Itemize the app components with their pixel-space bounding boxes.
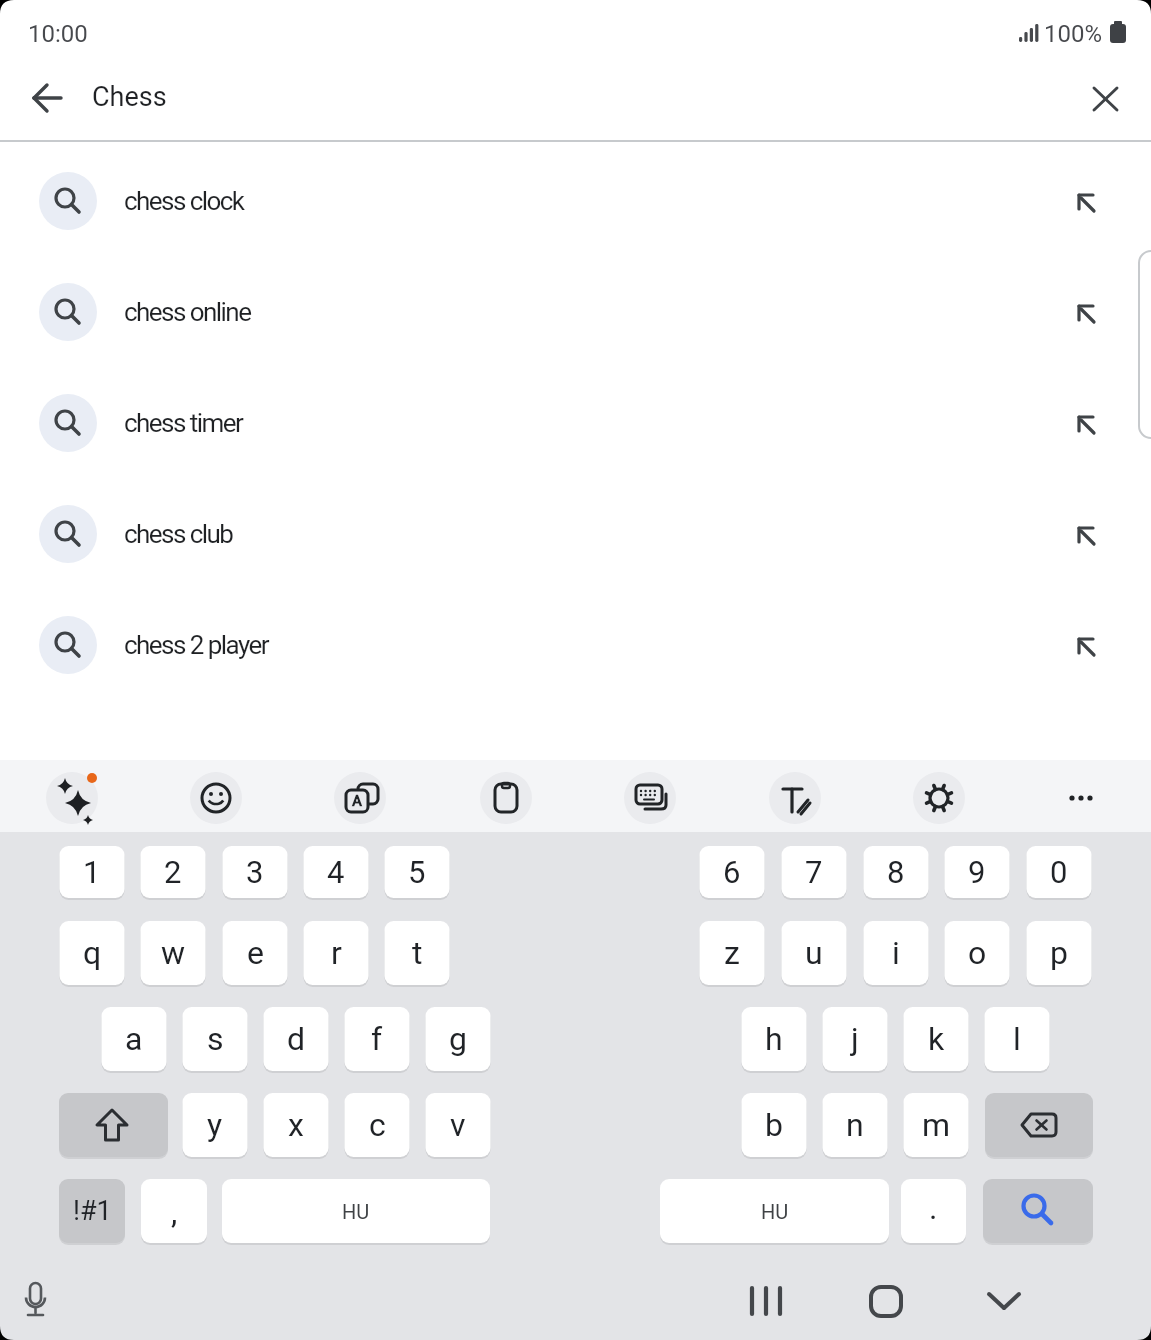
staticText: k [928, 1020, 945, 1058]
staticText: chess club [124, 519, 233, 549]
staticText: chess timer [124, 408, 243, 438]
staticText: 5 [408, 854, 426, 890]
staticText: chess online [124, 297, 251, 327]
staticText: r [331, 934, 342, 972]
staticText: 8 [887, 854, 905, 890]
staticText: 9 [968, 854, 986, 890]
staticText: 100% [1044, 20, 1103, 48]
staticText: 7 [805, 854, 823, 890]
staticText: Chess [92, 81, 167, 113]
staticText: . [929, 1189, 938, 1227]
staticText: !#1 [73, 1195, 112, 1227]
staticText: d [287, 1020, 306, 1058]
staticText: chess clock [124, 186, 244, 216]
staticText: v [450, 1106, 466, 1144]
staticText: HU [761, 1200, 789, 1223]
staticText: 1 [83, 854, 101, 890]
staticText: 0 [1050, 854, 1068, 890]
staticText: t [412, 934, 423, 972]
staticText: j [851, 1020, 859, 1058]
staticText: HU [342, 1200, 370, 1223]
staticText: e [247, 934, 264, 972]
staticText: f [371, 1020, 383, 1058]
staticText: y [207, 1106, 223, 1144]
staticText: b [765, 1106, 783, 1144]
staticText: chess 2 player [124, 630, 268, 660]
staticText: n [846, 1106, 864, 1144]
staticText: 2 [164, 854, 182, 890]
staticText: , [171, 1193, 178, 1231]
staticText: 3 [246, 854, 264, 890]
staticText: q [83, 934, 102, 972]
staticText: i [892, 934, 900, 972]
staticText: 4 [327, 854, 345, 890]
staticText: h [765, 1020, 783, 1058]
staticText: x [288, 1106, 304, 1144]
staticText: g [449, 1020, 467, 1058]
staticText: 10:00 [28, 20, 88, 48]
staticText: l [1013, 1020, 1021, 1058]
staticText: 6 [723, 854, 741, 890]
staticText: z [724, 934, 740, 972]
staticText: w [161, 934, 186, 972]
staticText: o [968, 934, 987, 972]
staticText: s [207, 1020, 224, 1058]
staticText: m [922, 1106, 951, 1144]
staticText: A [352, 792, 362, 810]
staticText: a [125, 1020, 143, 1058]
staticText: c [369, 1106, 386, 1144]
staticText: u [805, 934, 823, 972]
staticText: p [1050, 934, 1068, 972]
